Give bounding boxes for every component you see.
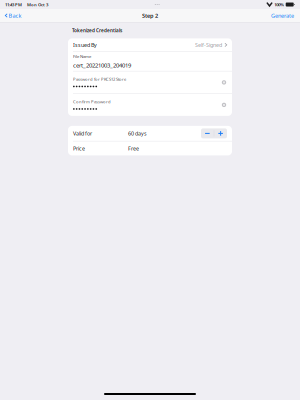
staticText: cert_20221003_204019 (73, 61, 131, 69)
button[interactable]: Back (0, 9, 26, 22)
staticText: Password for PKCS12 Store (73, 76, 126, 82)
staticText: Valid for (73, 130, 92, 137)
button[interactable]: Generate (265, 9, 300, 22)
button[interactable]: Decrease validity (201, 128, 214, 138)
staticText: Price (73, 145, 85, 152)
staticText: 11:43 PM (5, 2, 22, 7)
button[interactable]: Increase validity (214, 128, 227, 138)
staticText: Free (128, 145, 139, 152)
staticText: Generate (271, 12, 294, 19)
button[interactable]: Clear Password for PKCS12 Store (221, 79, 227, 85)
staticText: 60 days (128, 130, 147, 137)
staticText: Tokenized Credentials (72, 27, 122, 34)
button[interactable]: Clear Confirm Password (221, 102, 227, 108)
staticText: Step 2 (142, 12, 158, 19)
staticText: File Name (73, 53, 91, 59)
staticText: Issued By (73, 41, 97, 49)
staticText: Confirm Password (73, 99, 111, 104)
staticText: 100% (274, 2, 284, 7)
staticText: Mon Oct 3 (27, 2, 48, 7)
button[interactable]: Issued By (68, 38, 232, 51)
staticText: Self-Signed (195, 41, 222, 49)
staticText: Back (8, 12, 21, 19)
